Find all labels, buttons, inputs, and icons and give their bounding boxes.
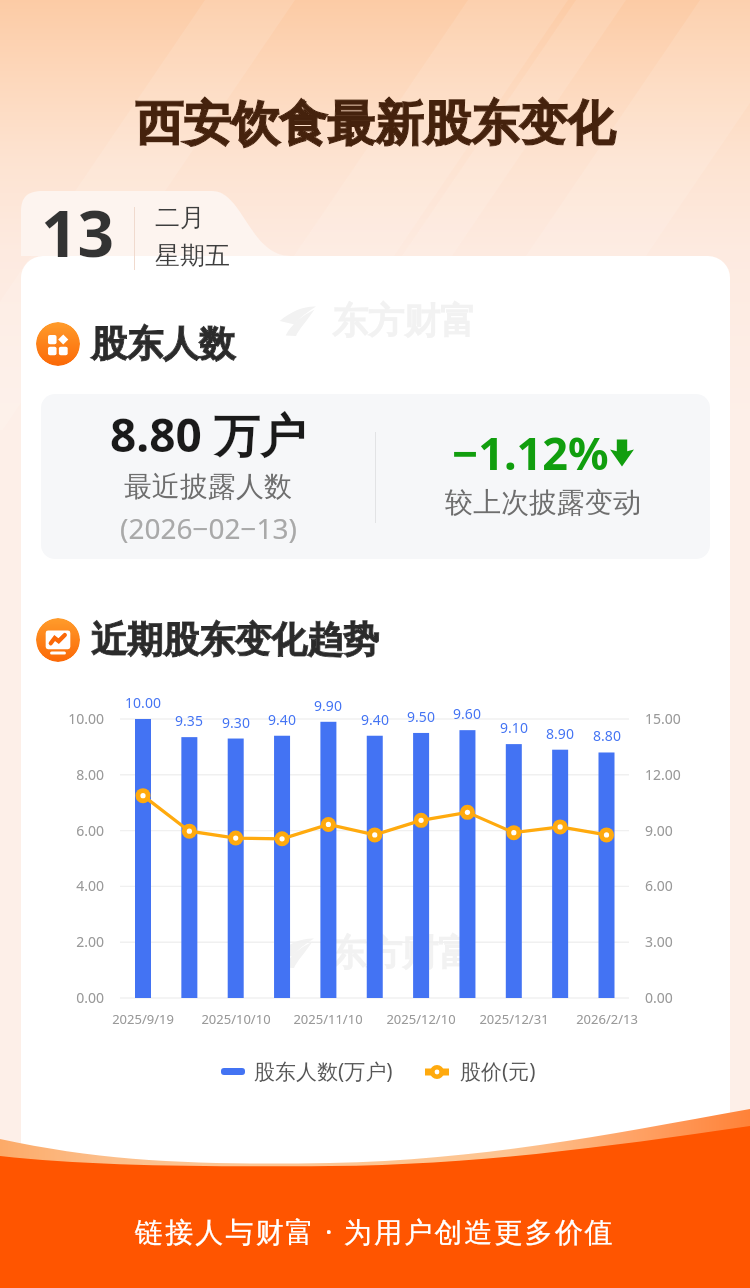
staticText: 股东人数 [91, 321, 235, 366]
staticText: 近期股东变化趋势 [91, 617, 379, 662]
staticText: 2025/11/10 [268, 1010, 388, 1028]
staticText: 10.00 [113, 693, 173, 712]
staticText: 2025/9/19 [83, 1010, 203, 1028]
staticText: 9.00 [645, 821, 715, 840]
staticText: 13 [41, 189, 115, 276]
staticText: 4.00 [34, 876, 104, 895]
staticText: 星期五 [155, 240, 230, 271]
staticText: 股东人数(万户) [254, 1057, 393, 1086]
staticText: 9.30 [206, 713, 266, 732]
staticText: 二月 [155, 202, 205, 233]
staticText: 西安饮食最新股东变化 [0, 94, 750, 154]
staticText: 较上次披露变动 [445, 485, 641, 520]
staticText: 9.90 [298, 696, 358, 715]
staticText: 8.80 [577, 726, 637, 745]
staticText: 东方财富 [332, 298, 476, 343]
staticText: 6.00 [34, 821, 104, 840]
staticText: 2025/10/10 [176, 1010, 296, 1028]
staticText: 股价(元) [460, 1057, 536, 1086]
staticText: 东方财富 [330, 930, 474, 975]
staticText: 12.00 [645, 765, 715, 784]
staticText: 2025/12/10 [361, 1010, 481, 1028]
staticText: 9.60 [437, 704, 497, 723]
staticText: 西安饮食最新股东变化 [0, 94, 750, 154]
staticText: 15.00 [645, 709, 715, 728]
staticText: −1.12% [452, 422, 609, 483]
button[interactable]: 近期股东变化趋势 [36, 617, 379, 662]
staticText: 2026/2/13 [547, 1010, 667, 1028]
staticText: 9.40 [252, 710, 312, 729]
staticText: 9.10 [484, 718, 544, 737]
staticText: 2025/12/31 [454, 1010, 574, 1028]
staticText: 0.00 [645, 988, 715, 1007]
staticText: 0.00 [34, 988, 104, 1007]
staticText: 9.35 [159, 711, 219, 730]
staticText: 最近披露人数 [124, 469, 292, 504]
staticText: 8.90 [530, 724, 590, 743]
staticText: 3.00 [645, 932, 715, 951]
staticText: 近期股东变化趋势 [91, 617, 379, 662]
staticText: 6.00 [645, 876, 715, 895]
staticText: 9.50 [391, 707, 451, 726]
staticText: 8.80 万户 [110, 403, 306, 466]
staticText: 9.40 [345, 710, 405, 729]
staticText: (2026−02−13) [120, 509, 297, 547]
staticText: 链接人与财富 · 为用户创造更多价值 [0, 1212, 750, 1250]
button[interactable]: 股东人数 [36, 321, 235, 366]
staticText: 股东人数 [91, 321, 235, 366]
staticText: 2.00 [34, 932, 104, 951]
staticText: 10.00 [34, 709, 104, 728]
staticText: 8.00 [34, 765, 104, 784]
